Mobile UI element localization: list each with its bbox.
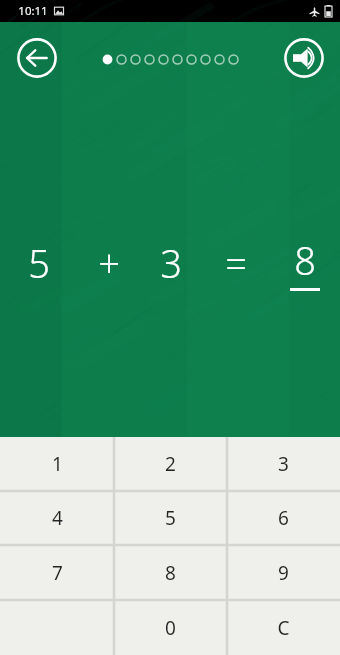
staticText: 10:11 — [18, 3, 48, 19]
staticText: 8 — [165, 560, 176, 586]
button[interactable]: Back — [14, 35, 60, 81]
button[interactable]: 6 — [227, 491, 340, 545]
button[interactable]: 3 — [227, 437, 340, 491]
staticText: 1 — [52, 451, 63, 477]
button[interactable]: 1 — [0, 437, 114, 491]
staticText: 0 — [165, 615, 176, 641]
staticText: 5 — [165, 505, 176, 531]
staticText: 9 — [278, 560, 289, 586]
button[interactable]: 8 — [114, 545, 227, 600]
button[interactable]: 2 — [114, 437, 227, 491]
staticText: 5 — [28, 237, 50, 289]
staticText: 3 — [160, 237, 182, 289]
button[interactable]: 9 — [227, 545, 340, 600]
staticText: 3 — [278, 451, 289, 477]
button[interactable]: 5 — [114, 491, 227, 545]
staticText: 4 — [52, 505, 63, 531]
button[interactable]: C — [227, 600, 340, 655]
staticText: 7 — [52, 560, 63, 586]
staticText: C — [277, 615, 290, 641]
button[interactable]: Sound — [281, 35, 327, 81]
staticText: 2 — [165, 451, 176, 477]
button[interactable]: 4 — [0, 491, 114, 545]
staticText: = — [225, 237, 247, 289]
staticText: 8 — [294, 234, 316, 286]
button[interactable]: 0 — [114, 600, 227, 655]
staticText: + — [98, 237, 120, 289]
staticText: 6 — [278, 505, 289, 531]
button[interactable]: 7 — [0, 545, 114, 600]
